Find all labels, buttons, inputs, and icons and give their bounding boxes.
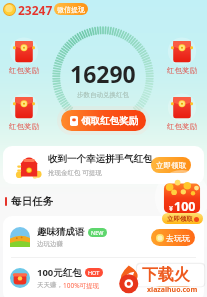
button[interactable]: 红包奖励: [163, 40, 201, 75]
staticText: NEW: [91, 229, 104, 236]
button[interactable]: 立即领取: [151, 157, 191, 173]
staticText: 16290: [70, 58, 136, 89]
button[interactable]: 收到一个幸运拼手气红包: [3, 146, 204, 184]
staticText: 红包奖励: [167, 122, 197, 131]
staticText: 步数自动兑换红包: [77, 91, 129, 99]
staticText: 趣味猜成语: [37, 226, 85, 238]
button[interactable]: 立即领取: [162, 213, 203, 224]
button[interactable]: 红包奖励: [5, 40, 43, 75]
staticText: 100%可提现: [63, 281, 100, 290]
button[interactable]: 微信提现: [54, 3, 88, 15]
staticText: 立即领: [166, 274, 190, 284]
staticText: 收到一个幸运拼手气红包: [48, 153, 153, 165]
button[interactable]: 领取红包奖励: [61, 110, 146, 131]
button[interactable]: 去玩玩: [151, 229, 195, 246]
staticText: 23247: [18, 2, 53, 16]
staticText: 领取红包奖励: [81, 115, 138, 127]
staticText: 边玩边赚: [37, 240, 63, 248]
staticText: 红包奖励: [9, 122, 39, 131]
staticText: 立即领取: [167, 215, 193, 223]
button[interactable]: ¥: [160, 178, 204, 224]
staticText: ¥: [169, 204, 174, 214]
staticText: 每日任务: [11, 195, 53, 207]
button[interactable]: 红包奖励: [5, 96, 43, 131]
staticText: 去玩玩: [166, 233, 190, 243]
staticText: 微信提现: [57, 5, 85, 14]
staticText: 下载火: [142, 265, 190, 285]
staticText: 100: [174, 198, 196, 215]
button[interactable]: 每日任务: [5, 195, 53, 207]
staticText: 红包奖励: [9, 66, 39, 75]
button[interactable]: 23247: [3, 2, 53, 16]
staticText: 立即领取: [156, 161, 186, 170]
button[interactable]: 红包奖励: [163, 96, 201, 131]
staticText: 100元红包: [37, 266, 82, 279]
staticText: 天天赚，: [37, 281, 63, 289]
staticText: 抢现金红包 可提现: [48, 168, 102, 177]
button[interactable]: 100元红包: [3, 258, 204, 297]
staticText: HOT: [88, 269, 100, 276]
staticText: xiazaihuo.com: [147, 285, 198, 295]
staticText: 红包奖励: [167, 66, 197, 75]
button[interactable]: 趣味猜成语: [3, 217, 204, 257]
button[interactable]: 立即领: [151, 270, 195, 287]
